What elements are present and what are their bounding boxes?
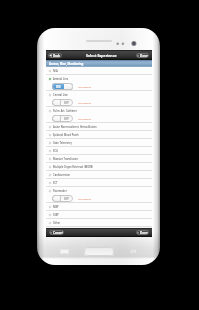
staticText: Multiple Organ Retrieval (MORE) [53, 165, 94, 169]
staticText: Central Line [53, 93, 68, 97]
button[interactable]: Cardioversion [46, 171, 152, 179]
staticText: ECG [53, 149, 58, 153]
staticText: Other [53, 221, 61, 225]
button[interactable]: OFF [52, 115, 73, 122]
staticText: SSEP [53, 213, 59, 217]
staticText: ECT [53, 181, 58, 185]
staticText: Gate Telemetry [53, 141, 72, 145]
button[interactable]: Cancel [49, 230, 64, 235]
button[interactable]: Central Line [46, 91, 152, 107]
button[interactable]: Multiple Organ Retrieval (MORE) [46, 163, 152, 171]
button[interactable]: OFF [52, 99, 73, 106]
staticText: Massive Transfusion [53, 157, 79, 161]
staticText: Back [53, 54, 61, 58]
staticText: OFF [64, 197, 70, 201]
button[interactable]: Pulm. Art. Catheter [46, 107, 152, 123]
staticText: OFF [64, 101, 70, 105]
button[interactable]: Pacemaker [46, 187, 152, 203]
staticText: Done [140, 54, 148, 58]
staticText: N/A [53, 69, 58, 73]
button[interactable]: Acute Normovolemic Hemodilution [46, 123, 152, 131]
button[interactable]: Other [46, 219, 152, 227]
staticText: Pulm. Art. Catheter [53, 109, 77, 113]
staticText: not present [78, 85, 92, 88]
staticText: Access, Mon, Monitoring [49, 62, 84, 66]
other: Back [130, 249, 136, 253]
button[interactable]: Done [136, 53, 149, 58]
staticText: Cancel [53, 231, 63, 235]
staticText: Pacemaker [53, 189, 67, 193]
staticText: Acute Normovolemic Hemodilution [53, 125, 97, 129]
staticText: Arterial Line [53, 77, 69, 81]
staticText: Select Experience [86, 53, 117, 58]
button[interactable]: Gate Telemetry [46, 139, 152, 147]
staticText: MBP [53, 205, 59, 209]
button[interactable]: ECT [46, 179, 152, 187]
staticText: Cardioversion [53, 173, 71, 177]
other: Menu [60, 249, 69, 254]
staticText: not present [78, 197, 92, 200]
staticText: OFF [64, 117, 70, 121]
button[interactable]: MBP [46, 203, 152, 211]
button[interactable]: Arterial Line [46, 75, 152, 91]
button[interactable]: Massive Transfusion [46, 155, 152, 163]
button[interactable]: OFF [52, 195, 73, 202]
button[interactable]: Back [48, 53, 62, 58]
button[interactable]: Done [136, 230, 149, 235]
button[interactable]: N/A [46, 67, 152, 75]
staticText: Done [140, 231, 148, 235]
staticText: ON [56, 85, 61, 89]
button[interactable]: Epidural Blood Patch [46, 131, 152, 139]
button[interactable]: SSEP [46, 211, 152, 219]
staticText: not present [78, 101, 92, 104]
staticText: Epidural Blood Patch [53, 133, 79, 137]
button[interactable]: ON [52, 83, 73, 90]
staticText: not present [78, 117, 92, 120]
button[interactable]: ECG [46, 147, 152, 155]
